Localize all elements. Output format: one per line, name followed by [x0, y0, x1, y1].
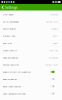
- staticText: Set as homepage: [2, 20, 18, 23]
- staticText: Desktop: [49, 13, 57, 16]
- staticText: New tab: [48, 49, 57, 52]
- staticText: User agent: [2, 13, 13, 16]
- staticText: Open links in: [2, 49, 16, 52]
- staticText: Settings: [5, 5, 18, 10]
- button[interactable]: Default font: [0, 32, 62, 39]
- staticText: Google: [50, 27, 57, 30]
- staticText: Keep screen on: [2, 78, 16, 81]
- staticText: Reset zoom button: [2, 85, 20, 88]
- staticText: 100%: [52, 42, 57, 45]
- button[interactable]: Back: [0, 4, 5, 11]
- staticText: Search engine: [2, 27, 15, 30]
- button[interactable]: Reset zoom button: [0, 83, 62, 90]
- staticText: Show advanced settings: [2, 92, 25, 95]
- button[interactable]: Text size: [0, 39, 62, 47]
- staticText: Default font: [2, 34, 15, 37]
- button[interactable]: Open links in: [0, 47, 62, 54]
- staticText: Disabled: [48, 56, 57, 59]
- staticText: Current site: [45, 20, 57, 23]
- button[interactable]: Toolbar position: [0, 61, 62, 68]
- button[interactable]: Enable scripts for websites: [0, 68, 62, 75]
- button[interactable]: Show advanced settings: [0, 90, 62, 97]
- staticText: Text size: [2, 42, 11, 45]
- staticText: serif: [52, 34, 57, 37]
- staticText: Default web: [44, 63, 57, 66]
- staticText: Page preloading: [2, 56, 17, 59]
- button[interactable]: Page preloading: [0, 54, 62, 61]
- button[interactable]: User agent: [0, 11, 62, 18]
- staticText: Enable scripts for websites: [2, 70, 30, 73]
- button[interactable]: Keep screen on: [0, 75, 62, 83]
- staticText: Toolbar position: [2, 63, 18, 66]
- button[interactable]: Search engine: [0, 25, 62, 32]
- button[interactable]: Set as homepage: [0, 18, 62, 25]
